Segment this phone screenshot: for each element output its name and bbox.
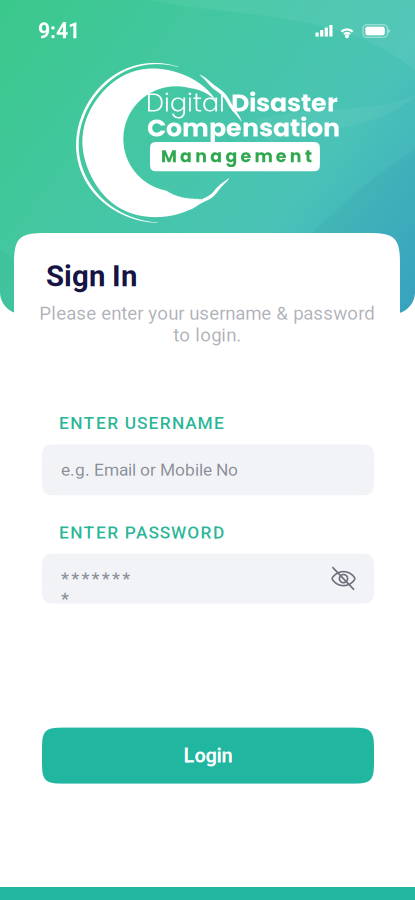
staticText: e.g. Email or Mobile No	[61, 460, 238, 480]
staticText: Sign In	[46, 259, 137, 293]
staticText: Please enter your username & password to…	[39, 302, 375, 346]
staticText: 9:41	[38, 18, 80, 43]
staticText: ********	[61, 568, 140, 589]
staticText: ENTER PASSWORD	[59, 522, 224, 543]
button[interactable]: Login	[42, 728, 374, 784]
staticText: Disaster	[231, 85, 338, 120]
staticText: Digital	[146, 85, 225, 120]
staticText: ENTER USERNAME	[59, 413, 224, 433]
button[interactable]: Show password	[325, 554, 362, 603]
staticText: Compensation	[147, 110, 340, 145]
staticText: Login	[183, 744, 232, 767]
staticText: Management	[161, 144, 312, 168]
